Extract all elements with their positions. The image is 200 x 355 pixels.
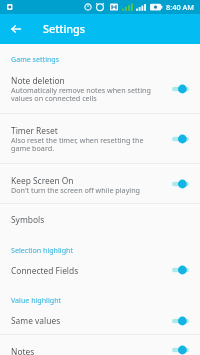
staticText: Notes (11, 346, 35, 355)
staticText: Value highlight (11, 295, 62, 305)
button[interactable]: Keep Screen On (0, 164, 200, 203)
button[interactable]: Connected Fields (0, 257, 200, 283)
staticText: Automatically remove notes when setting … (11, 85, 151, 103)
staticText: Connected Fields (11, 265, 79, 276)
staticText: Timer Reset (11, 125, 58, 136)
staticText: Selection highlight (11, 245, 73, 255)
staticText: 8:40 AM (166, 2, 195, 12)
button[interactable]: Back (0, 14, 32, 44)
button[interactable]: Note deletion (0, 64, 200, 113)
staticText: Same values (11, 315, 61, 326)
button[interactable]: Symbols (0, 204, 200, 232)
staticText: Also reset the timer, when resetting the… (11, 135, 144, 153)
button[interactable]: Same values (0, 307, 200, 334)
button[interactable]: Timer Reset (0, 114, 200, 163)
staticText: Note deletion (11, 75, 65, 86)
staticText: Settings (43, 21, 86, 36)
button[interactable]: Notes (0, 335, 200, 355)
staticText: Keep Screen On (11, 175, 74, 186)
staticText: Game settings (11, 54, 60, 64)
staticText: Symbols (11, 214, 45, 225)
staticText: Don't turn the screen off while playing (11, 185, 141, 195)
